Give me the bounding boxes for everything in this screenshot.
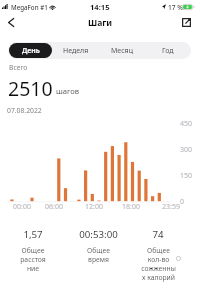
staticText: шагов bbox=[56, 86, 80, 96]
staticText: 150 bbox=[180, 171, 193, 181]
button[interactable]: Back bbox=[2, 14, 19, 31]
staticText: Шаги bbox=[88, 17, 113, 29]
staticText: MegaFon #1 bbox=[11, 3, 48, 11]
button[interactable]: 00:53:00 bbox=[68, 228, 128, 264]
button[interactable]: Месяц bbox=[100, 43, 144, 58]
button[interactable]: Share bbox=[178, 14, 195, 31]
button[interactable]: День bbox=[9, 43, 52, 58]
staticText: 300 bbox=[180, 145, 193, 155]
staticText: 00:00 bbox=[13, 202, 31, 212]
staticText: 0 bbox=[180, 197, 185, 207]
staticText: Месяц bbox=[111, 46, 133, 56]
staticText: Неделя bbox=[63, 46, 89, 56]
staticText: 17 % bbox=[168, 3, 183, 12]
button[interactable]: Неделя bbox=[54, 43, 98, 58]
staticText: Год bbox=[162, 46, 174, 56]
button[interactable]: Год bbox=[146, 43, 190, 58]
staticText: 2510 bbox=[8, 75, 53, 102]
staticText: Общее расстоя ние bbox=[20, 246, 46, 273]
staticText: 00:53:00 bbox=[79, 228, 118, 241]
staticText: Всего bbox=[9, 63, 28, 72]
staticText: 18:00 bbox=[122, 202, 140, 212]
button[interactable]: 74 bbox=[128, 228, 188, 282]
button[interactable]: 1,57 bbox=[3, 228, 63, 273]
staticText: 450 bbox=[180, 119, 193, 129]
staticText: 07.08.2022 bbox=[7, 106, 42, 115]
staticText: День bbox=[22, 46, 40, 56]
staticText: Общее время bbox=[87, 246, 110, 264]
staticText: 1,57 bbox=[23, 228, 43, 241]
staticText: 12:00 bbox=[85, 202, 103, 212]
staticText: 14:15 bbox=[90, 2, 110, 12]
staticText: 23:59 bbox=[162, 202, 180, 212]
staticText: Общее кол-во сожженны х калорий bbox=[141, 246, 176, 282]
staticText: 74 bbox=[152, 228, 164, 241]
staticText: 06:00 bbox=[45, 202, 63, 212]
